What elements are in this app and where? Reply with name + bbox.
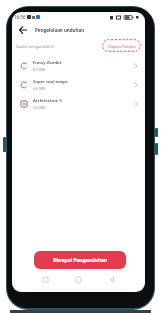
staticText: Architecture 5 (33, 98, 62, 104)
button[interactable] (16, 24, 30, 36)
staticText: Funny Zombie (33, 60, 62, 66)
button[interactable]: Riwayat Pengunduhan (34, 251, 126, 269)
staticText: 5.7 MB (33, 67, 45, 72)
button[interactable]: Hapus Rekam (102, 39, 141, 52)
staticText: Super cool magic (33, 79, 68, 85)
staticText: Sudah mengunduh(3) (16, 44, 54, 49)
button[interactable]: Super cool magic (12, 75, 145, 94)
staticText: Pengelolaan unduhan (35, 27, 85, 33)
staticText: Hapus Rekam (108, 43, 136, 49)
staticText: 2.5 MB (33, 105, 45, 110)
staticText: Riwayat Pengunduhan (53, 257, 107, 264)
staticText: 4.6 MB (33, 86, 45, 91)
button[interactable]: Architecture 5 (12, 94, 145, 113)
button[interactable]: Funny Zombie (12, 56, 145, 75)
staticText: 16:56 (14, 14, 26, 20)
